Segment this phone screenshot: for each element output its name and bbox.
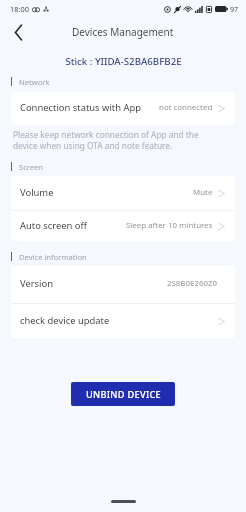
staticText: Devices Management bbox=[72, 25, 174, 39]
staticText: Screen bbox=[19, 162, 44, 171]
staticText: Version bbox=[20, 277, 54, 290]
staticText: not connected bbox=[159, 102, 213, 113]
button[interactable]: check device update bbox=[11, 304, 235, 338]
staticText: Network bbox=[19, 77, 50, 86]
staticText: Volume bbox=[20, 186, 54, 199]
button[interactable]: Version bbox=[11, 266, 235, 303]
staticText: Please keep network connection of App an… bbox=[13, 129, 199, 151]
staticText: UNBIND DEVICE bbox=[86, 388, 161, 401]
button[interactable]: UNBIND DEVICE bbox=[71, 382, 175, 406]
button[interactable]: Auto screen off bbox=[11, 211, 235, 241]
staticText: Connection status with App bbox=[20, 101, 142, 114]
staticText: Device information bbox=[19, 252, 87, 261]
staticText: Stick : YIIDA-S2BA6BFB2E bbox=[65, 55, 182, 68]
staticText: Sleep after 10 mintures bbox=[126, 220, 213, 231]
staticText: Auto screen off bbox=[20, 219, 87, 232]
staticText: 18:00 bbox=[10, 4, 29, 14]
staticText: 97 bbox=[230, 4, 239, 14]
button[interactable]: Connection status with App bbox=[11, 92, 235, 125]
staticText: check device update bbox=[20, 314, 110, 327]
button[interactable]: Back bbox=[6, 20, 30, 44]
staticText: Mute bbox=[193, 187, 213, 198]
button[interactable]: Volume bbox=[11, 176, 235, 210]
staticText: 2S8B0E260Z0 bbox=[167, 278, 217, 289]
